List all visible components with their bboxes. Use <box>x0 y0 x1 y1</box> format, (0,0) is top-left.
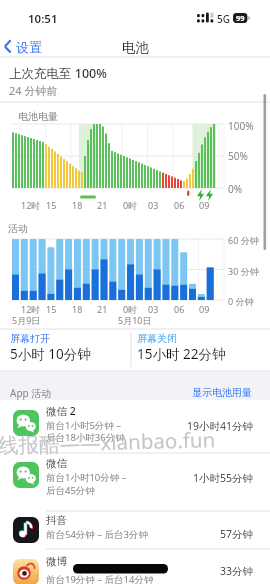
staticText: 0时 <box>123 199 138 211</box>
staticText: 10:51 <box>28 11 58 27</box>
staticText: 后台45分钟 <box>46 484 95 497</box>
staticText: 前台54分钟 – 后台3分钟 <box>46 528 148 541</box>
staticText: 21 <box>97 199 108 211</box>
staticText: 5月9日 <box>12 314 41 326</box>
staticText: 前台1小时10分钟 – <box>46 471 127 484</box>
staticText: 60 分钟 <box>228 234 259 246</box>
button[interactable] <box>0 549 270 584</box>
staticText: 电池 <box>122 39 149 56</box>
staticText: 1小时55分钟 <box>193 471 254 485</box>
staticText: 设置 <box>16 39 42 55</box>
staticText: 09 <box>199 199 210 211</box>
staticText: 0时 <box>123 303 138 315</box>
button[interactable] <box>0 400 270 453</box>
staticText: 0% <box>228 182 243 196</box>
button[interactable] <box>180 384 260 399</box>
staticText: 03 <box>148 303 159 315</box>
staticText: 12时 <box>21 199 41 211</box>
staticText: 线报酷——xianbao.fun <box>0 425 216 459</box>
staticText: 5G <box>217 12 230 26</box>
staticText: 15 <box>46 303 57 315</box>
button[interactable] <box>0 511 270 549</box>
staticText: 5小时 10分钟 <box>10 345 91 363</box>
staticText: 19小时41分钟 <box>187 419 254 433</box>
staticText: 5月10日 <box>118 314 152 326</box>
staticText: 24 分钟前 <box>9 83 58 98</box>
staticText: 30 分钟 <box>228 265 259 277</box>
staticText: 微信 <box>46 457 67 470</box>
staticText: 后台18小时36分钟 <box>46 431 125 444</box>
staticText: 0 分钟 <box>228 295 254 307</box>
staticText: 03 <box>148 199 159 211</box>
staticText: 上次充电至 100% <box>9 65 107 82</box>
button[interactable] <box>2 36 50 58</box>
staticText: 活动 <box>8 222 28 235</box>
staticText: 前台19分钟 – 后台14分钟 <box>46 573 154 584</box>
staticText: 屏幕关闭 <box>137 332 177 345</box>
staticText: 显示电池用量 <box>192 386 252 399</box>
staticText: 99 <box>236 13 245 23</box>
staticText: 09 <box>199 303 210 315</box>
staticText: App 活动 <box>10 386 52 400</box>
staticText: 15小时 22分钟 <box>137 345 226 363</box>
staticText: 33分钟 <box>220 564 254 578</box>
staticText: 21 <box>97 303 108 315</box>
staticText: 微信 2 <box>46 404 76 418</box>
staticText: 06 <box>174 303 185 315</box>
staticText: 微博 <box>46 555 67 568</box>
staticText: 06 <box>174 199 185 211</box>
staticText: 前台1小时5分钟 – <box>46 419 122 432</box>
staticText: 抖音 <box>46 514 67 527</box>
staticText: 电池电量 <box>18 110 58 123</box>
staticText: 18 <box>72 303 83 315</box>
staticText: 18 <box>72 199 83 211</box>
staticText: 57分钟 <box>220 527 254 541</box>
staticText: 12时 <box>21 303 41 315</box>
staticText: 屏幕打开 <box>10 332 50 345</box>
staticText: 50% <box>228 149 248 163</box>
button[interactable] <box>0 453 270 511</box>
staticText: 100% <box>228 119 254 133</box>
staticText: 15 <box>46 199 57 211</box>
